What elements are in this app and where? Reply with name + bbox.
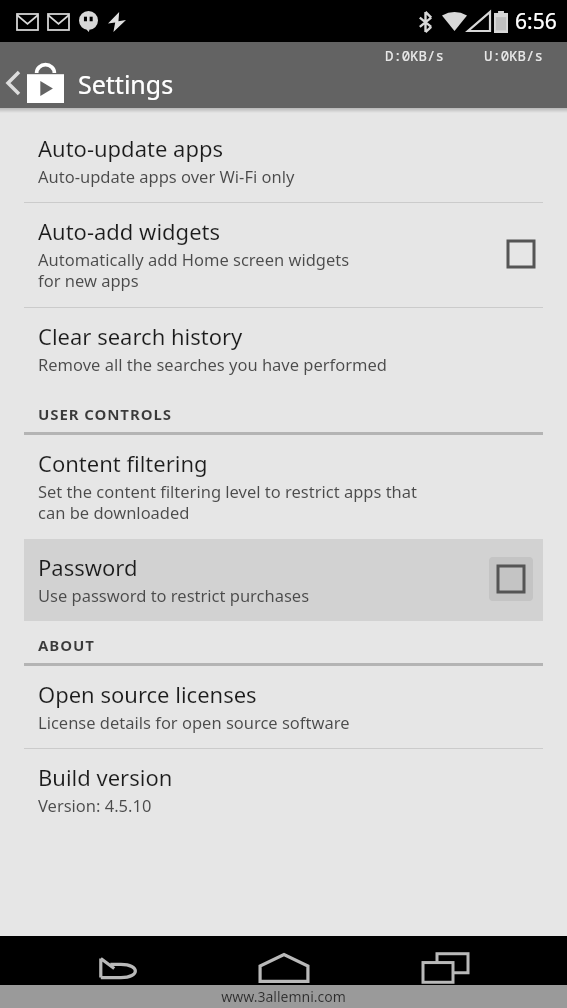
staticText: Auto-add widgets bbox=[38, 216, 221, 246]
staticText: Use password to restrict purchases bbox=[38, 584, 310, 606]
staticText: Automatically add Home screen widgets fo… bbox=[38, 248, 350, 292]
staticText: Content filtering bbox=[38, 448, 208, 478]
button[interactable]: Auto-update apps bbox=[0, 120, 567, 202]
button[interactable]: Clear search history bbox=[0, 308, 567, 390]
staticText: 6:56 bbox=[515, 7, 557, 36]
staticText: U:0KB/s bbox=[484, 46, 543, 65]
staticText: Build version bbox=[38, 762, 173, 792]
button[interactable]: Recent apps bbox=[404, 946, 490, 990]
staticText: Auto-update apps bbox=[38, 133, 223, 163]
button[interactable]: Navigate up bbox=[0, 57, 70, 109]
staticText: ABOUT bbox=[38, 635, 95, 655]
staticText: License details for open source software bbox=[38, 711, 350, 733]
staticText: www.3allemni.com bbox=[221, 987, 346, 1006]
staticText: Settings bbox=[78, 67, 174, 101]
button[interactable]: Open source licenses bbox=[0, 666, 567, 748]
staticText: Password bbox=[38, 552, 138, 582]
button[interactable]: Auto-add widgets bbox=[0, 203, 567, 307]
button[interactable]: Build version bbox=[0, 749, 567, 831]
staticText: USER CONTROLS bbox=[38, 404, 172, 424]
button[interactable]: Content filtering bbox=[0, 435, 567, 539]
staticText: Auto-update apps over Wi-Fi only bbox=[38, 165, 295, 187]
button[interactable]: Password bbox=[24, 539, 543, 621]
staticText: Open source licenses bbox=[38, 679, 257, 709]
staticText: D:0KB/s bbox=[385, 46, 444, 65]
staticText: Clear search history bbox=[38, 321, 243, 351]
staticText: Version: 4.5.10 bbox=[38, 794, 152, 816]
button[interactable]: Home bbox=[241, 946, 327, 990]
staticText: Remove all the searches you have perform… bbox=[38, 353, 387, 375]
staticText: Set the content filtering level to restr… bbox=[38, 480, 418, 524]
button[interactable]: Back bbox=[77, 946, 163, 990]
